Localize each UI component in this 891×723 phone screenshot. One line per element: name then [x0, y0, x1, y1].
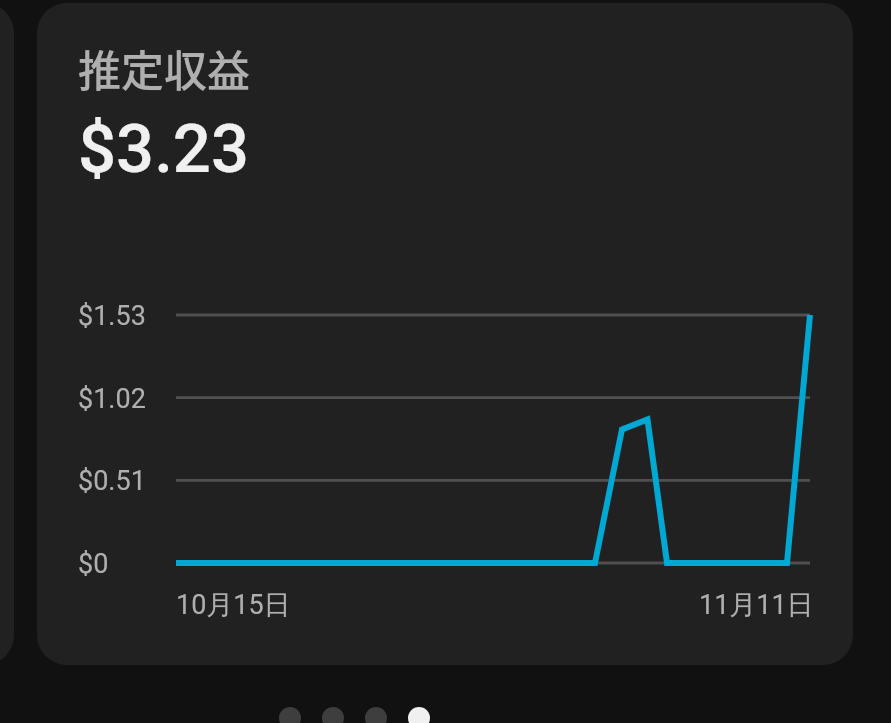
button[interactable]: Page 3 of 4: [365, 707, 387, 723]
staticText: $3.23: [78, 110, 250, 189]
button[interactable]: [37, 3, 853, 665]
button[interactable]: Page 1 of 4: [279, 707, 301, 723]
staticText: $0: [78, 548, 109, 580]
staticText: $1.02: [78, 383, 146, 415]
button[interactable]: Page 4 of 4: [408, 707, 430, 723]
staticText: 10月15日: [176, 588, 291, 622]
staticText: 推定収益: [78, 37, 250, 99]
staticText: $1.53: [78, 300, 146, 332]
staticText: $0.51: [78, 465, 146, 497]
button[interactable]: Page 2 of 4: [322, 707, 344, 723]
staticText: 11月11日: [699, 588, 814, 622]
